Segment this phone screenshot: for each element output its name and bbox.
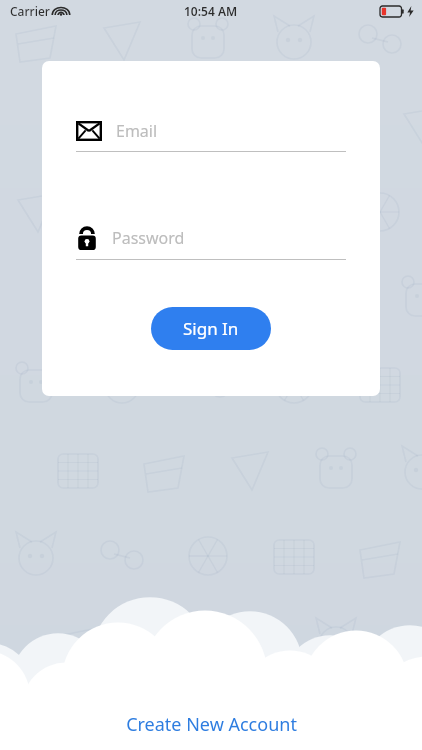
staticText: Password: [112, 227, 185, 249]
staticText: Sign In: [183, 317, 239, 340]
other: Email: [76, 121, 102, 141]
button[interactable]: Password: [76, 226, 346, 260]
staticText: Email: [116, 120, 158, 142]
other: Password: [76, 226, 98, 250]
button[interactable]: Email: [76, 120, 346, 152]
button[interactable]: Sign In: [151, 307, 271, 350]
button[interactable]: Create New Account: [0, 698, 422, 750]
staticText: Create New Account: [126, 712, 297, 737]
staticText: 10:54 AM: [184, 3, 238, 19]
staticText: Carrier: [10, 3, 50, 19]
